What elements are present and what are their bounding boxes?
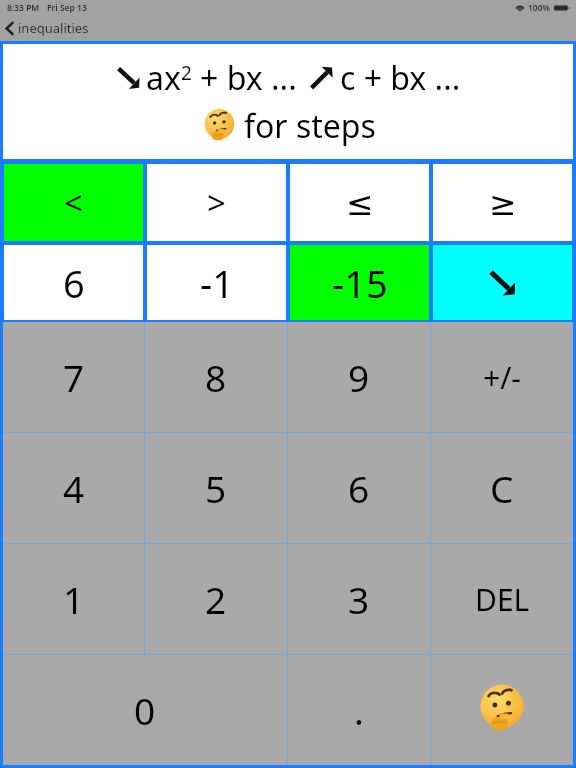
button[interactable]: 1 <box>3 544 144 654</box>
staticText: for steps <box>244 104 376 148</box>
button[interactable]: C <box>431 433 573 543</box>
button[interactable]: inequalities <box>0 16 99 40</box>
staticText: > <box>207 180 226 225</box>
staticText: 9 <box>348 352 370 402</box>
button[interactable]: 8 <box>145 322 287 432</box>
button[interactable]: 6 <box>288 433 430 543</box>
staticText: 1 <box>63 574 85 624</box>
button[interactable]: 6 <box>4 245 143 320</box>
button[interactable]: < <box>4 164 143 241</box>
staticText: -1 <box>200 257 234 309</box>
staticText: . <box>354 685 364 735</box>
staticText: c + bx ... <box>340 56 461 100</box>
staticText: 8 <box>205 352 227 402</box>
staticText: 5 <box>205 463 227 513</box>
staticText: 2 <box>205 574 227 624</box>
staticText: 6 <box>348 463 370 513</box>
staticText: 6 <box>63 257 85 309</box>
staticText: < <box>64 180 83 225</box>
button[interactable]: 9 <box>288 322 430 432</box>
staticText: ≤ <box>346 184 374 222</box>
staticText: Fri Sep 13 <box>47 2 87 14</box>
staticText: 7 <box>63 352 85 402</box>
staticText: 8:33 PM <box>7 2 40 14</box>
button[interactable]: +/- <box>431 322 573 432</box>
staticText: ax2 + bx ... <box>146 56 297 100</box>
staticText: inequalities <box>18 19 89 37</box>
button[interactable]: 4 <box>3 433 144 543</box>
button[interactable]: 0 <box>3 655 287 765</box>
button[interactable]: ax2 + bx ... <box>3 44 573 159</box>
staticText: 100% <box>528 2 551 14</box>
staticText: 4 <box>63 463 85 513</box>
button[interactable]: -1 <box>147 245 286 320</box>
button[interactable]: DEL <box>431 544 573 654</box>
button[interactable]: . <box>288 655 430 765</box>
button[interactable]: > <box>147 164 286 241</box>
staticText: 3 <box>348 574 370 624</box>
button[interactable]: -15 <box>290 245 429 320</box>
button[interactable]: 2 <box>145 544 287 654</box>
staticText: +/- <box>483 357 521 398</box>
staticText: ≥ <box>489 184 517 222</box>
button[interactable]: 5 <box>145 433 287 543</box>
button[interactable]: Show steps <box>431 655 573 765</box>
staticText: 0 <box>134 685 156 735</box>
button[interactable]: Next coefficient <box>433 245 572 320</box>
button[interactable]: 3 <box>288 544 430 654</box>
staticText: DEL <box>475 579 530 620</box>
button[interactable]: ≤ <box>290 164 429 241</box>
staticText: C <box>490 463 514 513</box>
button[interactable]: ≥ <box>433 164 572 241</box>
button[interactable]: 7 <box>3 322 144 432</box>
staticText: -15 <box>332 257 388 309</box>
